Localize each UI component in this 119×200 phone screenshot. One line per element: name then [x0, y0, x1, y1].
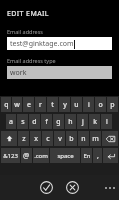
button[interactable]: s: [17, 114, 28, 129]
staticText: work: [10, 68, 27, 78]
button[interactable]: Backspace: [102, 131, 118, 146]
staticText: d: [32, 117, 37, 127]
button[interactable]: g: [53, 114, 64, 129]
button[interactable]: En: [81, 148, 92, 163]
staticText: EDIT EMAIL: [7, 9, 49, 19]
button[interactable]: n: [78, 131, 89, 146]
button[interactable]: ,: [93, 148, 102, 163]
button[interactable]: o: [95, 97, 106, 112]
staticText: i: [88, 100, 90, 110]
staticText: &123: [3, 152, 18, 160]
staticText: space: [57, 152, 74, 160]
button[interactable]: c: [42, 131, 53, 146]
button[interactable]: b: [66, 131, 77, 146]
button[interactable]: f: [41, 114, 52, 129]
button[interactable]: More: [101, 175, 119, 200]
staticText: ,: [97, 151, 99, 161]
button[interactable]: e: [23, 97, 34, 112]
staticText: p: [110, 100, 115, 110]
button[interactable]: h: [65, 114, 76, 129]
button[interactable]: space: [50, 148, 80, 163]
button[interactable]: work: [7, 66, 112, 79]
staticText: b: [69, 134, 74, 144]
button[interactable]: u: [71, 97, 82, 112]
staticText: e: [27, 100, 31, 110]
staticText: k: [93, 117, 97, 127]
button[interactable]: Done: [38, 179, 55, 196]
button[interactable]: d: [29, 114, 40, 129]
staticText: j: [82, 117, 84, 127]
staticText: s: [21, 117, 25, 127]
button[interactable]: Cancel: [64, 179, 81, 196]
button[interactable]: Enter: [103, 148, 118, 163]
button[interactable]: &123: [1, 148, 20, 163]
button[interactable]: a: [6, 114, 16, 129]
button[interactable]: r: [35, 97, 46, 112]
button[interactable]: w: [12, 97, 22, 112]
button[interactable]: p: [107, 97, 118, 112]
staticText: l: [106, 117, 108, 127]
staticText: Email address: [7, 28, 43, 35]
button[interactable]: q: [1, 97, 11, 112]
button[interactable]: t: [47, 97, 58, 112]
staticText: z: [22, 134, 26, 144]
staticText: g: [56, 117, 61, 127]
button[interactable]: x: [30, 131, 41, 146]
staticText: test@ginktage.com: [10, 39, 74, 49]
button[interactable]: k: [89, 114, 100, 129]
button[interactable]: .com: [33, 148, 49, 163]
staticText: v: [58, 134, 62, 144]
staticText: Email address type: [7, 57, 56, 64]
button[interactable]: m: [90, 131, 101, 146]
button[interactable]: l: [101, 114, 112, 129]
staticText: y: [63, 100, 67, 110]
staticText: f: [45, 117, 48, 127]
staticText: w: [14, 100, 20, 110]
staticText: u: [74, 100, 79, 110]
staticText: @: [23, 151, 30, 161]
staticText: t: [51, 100, 54, 110]
button[interactable]: j: [77, 114, 88, 129]
button[interactable]: i: [83, 97, 94, 112]
staticText: En: [83, 152, 91, 160]
staticText: .com: [34, 152, 48, 160]
staticText: r: [39, 100, 42, 110]
button[interactable]: v: [54, 131, 65, 146]
button[interactable]: Shift: [1, 131, 17, 146]
staticText: n: [81, 134, 86, 144]
button[interactable]: y: [59, 97, 70, 112]
button[interactable]: At sign: [21, 148, 32, 163]
button[interactable]: test@ginktage.com: [7, 37, 112, 50]
staticText: h: [68, 117, 73, 127]
staticText: m: [92, 134, 99, 144]
button[interactable]: z: [18, 131, 29, 146]
staticText: o: [98, 100, 103, 110]
staticText: a: [9, 117, 13, 127]
staticText: q: [4, 100, 9, 110]
staticText: x: [34, 134, 38, 144]
staticText: c: [46, 134, 50, 144]
